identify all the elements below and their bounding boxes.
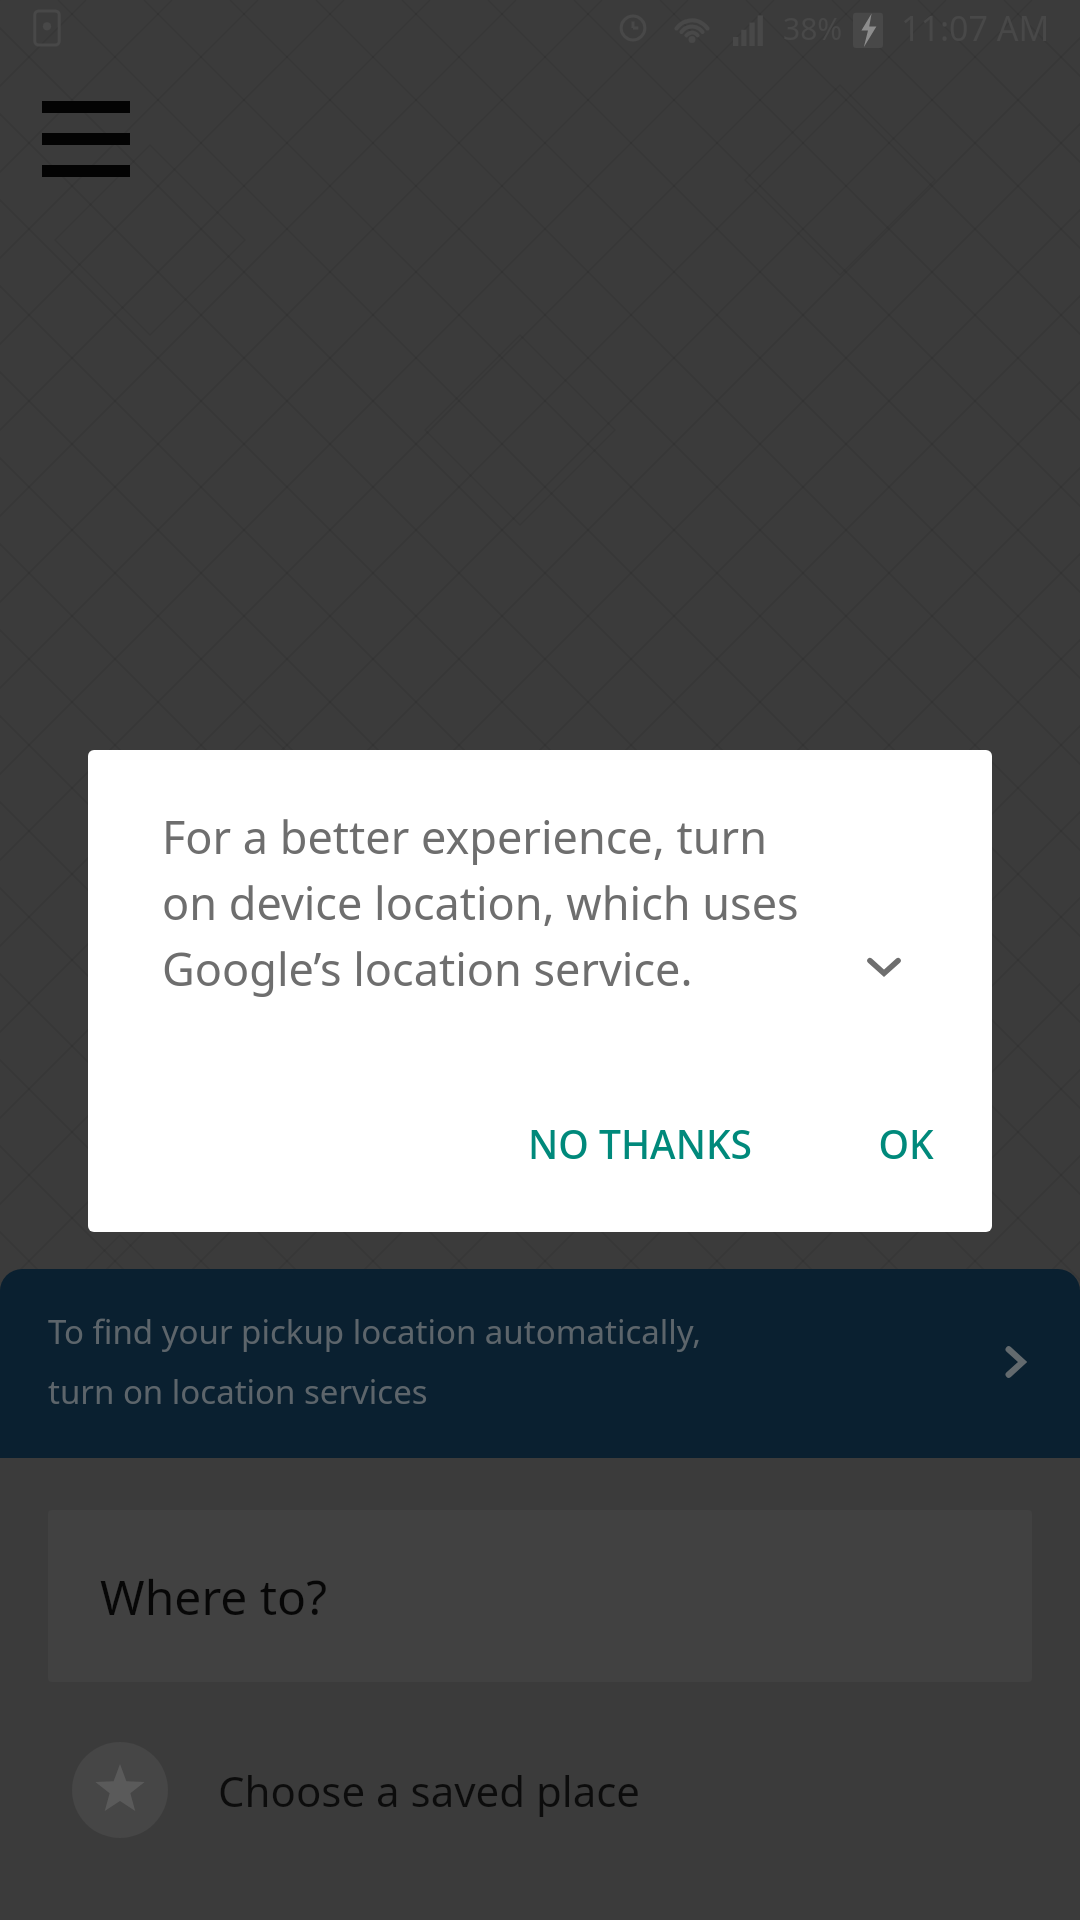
staticText: OK: [878, 1117, 934, 1170]
button[interactable]: To find your pickup location automatical…: [0, 1269, 1080, 1458]
other: Show more: [862, 945, 906, 989]
other: Open location settings: [998, 1341, 1040, 1383]
staticText: To find your pickup location automatical…: [48, 1309, 998, 1414]
button[interactable]: Choose a saved place: [0, 1730, 1080, 1850]
button[interactable]: Where to?: [48, 1510, 1032, 1682]
staticText: 11:07 AM: [901, 5, 1050, 51]
staticText: 38%: [783, 8, 843, 49]
button[interactable]: Open navigation menu: [24, 84, 148, 194]
staticText: For a better experience, turn on device …: [162, 806, 799, 999]
staticText: Where to?: [100, 1564, 327, 1629]
button[interactable]: NO THANKS: [506, 1095, 774, 1192]
staticText: Choose a saved place: [218, 1762, 641, 1819]
button[interactable]: OK: [856, 1095, 956, 1192]
staticText: NO THANKS: [528, 1117, 752, 1170]
